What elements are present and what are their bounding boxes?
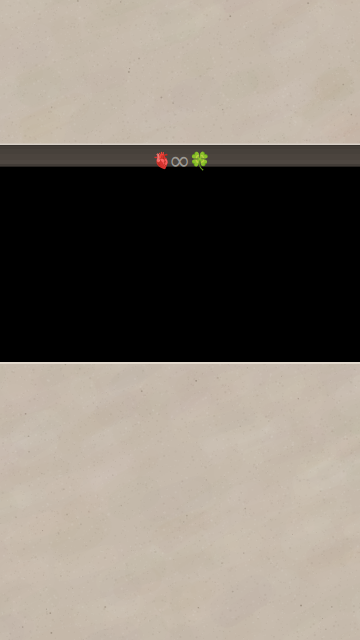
staticText: 🫀 [152,151,172,169]
staticText: ∞ [168,145,190,176]
button[interactable]: Heart, infinity, four leaf clover [150,143,208,174]
staticText: 🍀 [188,151,210,171]
